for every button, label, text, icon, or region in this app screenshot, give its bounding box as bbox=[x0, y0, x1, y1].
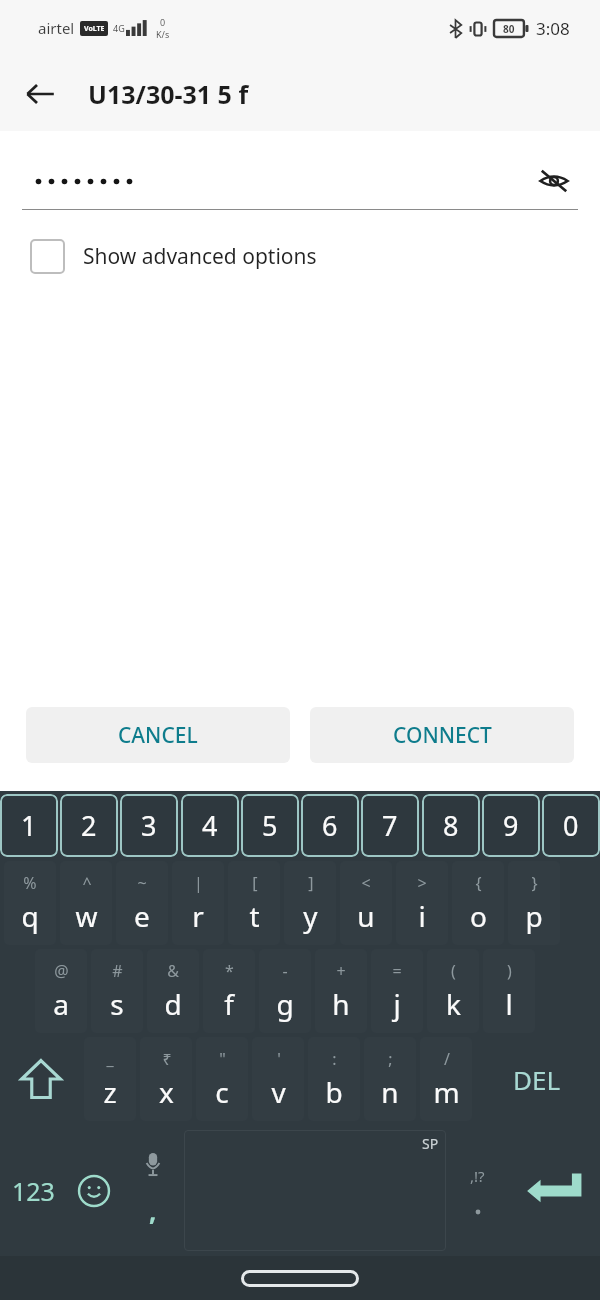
button[interactable]: Hide password bbox=[22, 153, 578, 209]
button[interactable]: 3 bbox=[120, 794, 178, 857]
button[interactable]: % bbox=[4, 861, 56, 945]
button[interactable]: Emoji bbox=[66, 1125, 122, 1256]
staticText: CANCEL bbox=[118, 721, 198, 750]
staticText: > bbox=[417, 872, 427, 894]
button[interactable]: | bbox=[172, 861, 224, 945]
staticText: K/s bbox=[156, 28, 170, 40]
button[interactable]: " bbox=[196, 1037, 248, 1121]
button[interactable]: 5 bbox=[241, 794, 299, 857]
button[interactable]: 1 bbox=[0, 794, 58, 857]
button[interactable]: 9 bbox=[482, 794, 540, 857]
staticText: Show advanced options bbox=[83, 242, 317, 271]
staticText: 6 bbox=[322, 807, 338, 844]
staticText: ( bbox=[451, 960, 456, 982]
button[interactable]: { bbox=[452, 861, 504, 945]
button[interactable]: _ bbox=[84, 1037, 136, 1121]
staticText: " bbox=[219, 1048, 226, 1070]
staticText: ) bbox=[507, 960, 512, 982]
staticText: ; bbox=[388, 1048, 393, 1070]
button[interactable]: Enter bbox=[508, 1125, 600, 1256]
button[interactable]: 8 bbox=[422, 794, 480, 857]
staticText: n bbox=[381, 1073, 399, 1111]
staticText: 5 bbox=[262, 807, 278, 844]
button[interactable]: } bbox=[508, 861, 560, 945]
staticText: 0 bbox=[160, 16, 166, 28]
staticText: 7 bbox=[382, 807, 398, 844]
staticText: j bbox=[393, 985, 401, 1023]
staticText: d bbox=[164, 985, 182, 1023]
staticText: | bbox=[194, 872, 203, 894]
button[interactable]: ; bbox=[364, 1037, 416, 1121]
staticText: f bbox=[224, 985, 234, 1023]
button[interactable]: : bbox=[308, 1037, 360, 1121]
button[interactable]: 123 bbox=[0, 1125, 66, 1256]
staticText: w bbox=[75, 897, 98, 935]
staticText: ₹ bbox=[162, 1048, 172, 1070]
staticText: ~ bbox=[137, 872, 147, 894]
button[interactable]: ] bbox=[284, 861, 336, 945]
button[interactable]: Show advanced options bbox=[0, 228, 600, 284]
button[interactable]: Hide password bbox=[530, 157, 578, 205]
staticText: 3 bbox=[141, 807, 157, 844]
button[interactable]: @ bbox=[35, 949, 87, 1033]
button[interactable]: ) bbox=[483, 949, 535, 1033]
button[interactable]: 2 bbox=[60, 794, 118, 857]
staticText: SP bbox=[422, 1134, 439, 1153]
staticText: h bbox=[332, 985, 350, 1023]
staticText: o bbox=[470, 897, 487, 935]
staticText: ' bbox=[277, 1048, 281, 1070]
staticText: 0 bbox=[563, 807, 579, 844]
staticText: @ bbox=[54, 960, 69, 982]
button[interactable]: Home bbox=[241, 1270, 359, 1287]
button[interactable]: Delete bbox=[474, 1037, 600, 1121]
button[interactable]: Space bbox=[184, 1130, 446, 1251]
staticText: % bbox=[23, 872, 37, 894]
staticText: : bbox=[332, 1048, 337, 1070]
button[interactable]: ' bbox=[252, 1037, 304, 1121]
button[interactable]: CANCEL bbox=[26, 707, 290, 763]
staticText: t bbox=[249, 897, 260, 935]
button[interactable]: 6 bbox=[301, 794, 359, 857]
button[interactable]: > bbox=[396, 861, 448, 945]
staticText: & bbox=[167, 960, 179, 982]
button[interactable]: < bbox=[340, 861, 392, 945]
button[interactable]: ₹ bbox=[140, 1037, 192, 1121]
staticText: 80 bbox=[503, 22, 515, 36]
button[interactable]: & bbox=[147, 949, 199, 1033]
staticText: 4 bbox=[202, 807, 218, 844]
staticText: [ bbox=[252, 872, 258, 894]
staticText: 9 bbox=[503, 807, 519, 844]
button[interactable]: # bbox=[91, 949, 143, 1033]
button[interactable]: Back bbox=[14, 68, 66, 120]
staticText: 1 bbox=[21, 807, 37, 844]
staticText: 123 bbox=[12, 1174, 55, 1208]
staticText: ^ bbox=[82, 872, 92, 894]
button[interactable]: [ bbox=[228, 861, 280, 945]
staticText: e bbox=[134, 897, 150, 935]
staticText: m bbox=[433, 1073, 460, 1111]
button[interactable]: 4 bbox=[181, 794, 239, 857]
button[interactable]: Shift bbox=[0, 1037, 82, 1121]
staticText: 8 bbox=[443, 807, 459, 844]
staticText: c bbox=[215, 1073, 229, 1111]
staticText: CONNECT bbox=[393, 721, 492, 750]
button[interactable]: ~ bbox=[116, 861, 168, 945]
button[interactable]: CONNECT bbox=[310, 707, 574, 763]
button[interactable]: = bbox=[371, 949, 423, 1033]
staticText: 2 bbox=[81, 807, 97, 844]
button[interactable]: 7 bbox=[361, 794, 419, 857]
button[interactable]: * bbox=[203, 949, 255, 1033]
button[interactable]: Voice input and comma bbox=[122, 1125, 184, 1256]
button[interactable]: - bbox=[259, 949, 311, 1033]
staticText: z bbox=[103, 1073, 117, 1111]
button[interactable]: 0 bbox=[542, 794, 600, 857]
staticText: q bbox=[21, 897, 39, 935]
staticText: x bbox=[159, 1073, 174, 1111]
staticText: # bbox=[112, 960, 123, 982]
button[interactable]: ^ bbox=[60, 861, 112, 945]
button[interactable]: Period and punctuation bbox=[446, 1125, 508, 1256]
staticText: p bbox=[525, 897, 543, 935]
button[interactable]: ( bbox=[427, 949, 479, 1033]
button[interactable]: + bbox=[315, 949, 367, 1033]
button[interactable]: / bbox=[420, 1037, 472, 1121]
